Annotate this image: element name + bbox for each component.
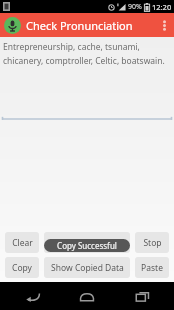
staticText: Show Copied Data	[51, 262, 124, 274]
staticText: Clear	[12, 237, 33, 249]
staticText: chicanery, comptroller, Celtic, boatswai…	[3, 55, 165, 67]
staticText: Pronounce	[65, 237, 109, 249]
staticText: 90%	[128, 2, 142, 12]
button[interactable]: Copy	[5, 257, 39, 278]
staticText: Copy Successful	[57, 240, 117, 251]
button[interactable]: Clear	[5, 232, 39, 253]
button[interactable]: Pronounce	[44, 232, 130, 253]
button[interactable]: Show Copied Data	[44, 257, 130, 278]
staticText: Paste	[141, 262, 163, 274]
staticText: Check Pronunciation	[26, 18, 133, 33]
button[interactable]: Home	[65, 282, 109, 310]
staticText: 12:20	[152, 2, 172, 12]
button[interactable]: Paste	[135, 257, 169, 278]
staticText: Entrepreneurship, cache, tsunami,	[3, 41, 140, 53]
staticText: Copy	[12, 262, 32, 274]
staticText: Stop	[143, 237, 162, 249]
button[interactable]: Stop	[135, 232, 169, 253]
button[interactable]: Back	[11, 282, 55, 310]
button[interactable]: Recent apps	[120, 282, 164, 310]
button[interactable]: More options	[154, 13, 174, 37]
